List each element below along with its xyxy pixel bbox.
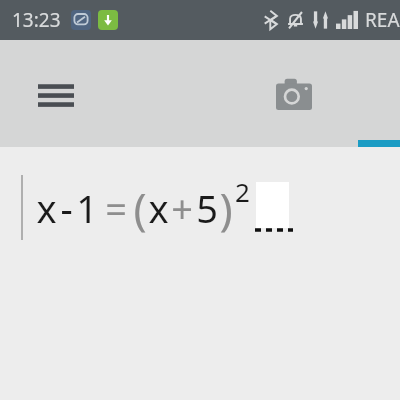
staticText: x [36,182,57,234]
button[interactable]: Camera [266,68,322,120]
staticText: REA [365,7,400,33]
button[interactable]: Answer input [255,175,293,240]
staticText: - [60,182,73,234]
staticText: 13:23 [12,7,61,33]
staticText: 2 [235,174,250,209]
staticText: 1 [76,182,98,234]
staticText: x [148,182,169,234]
button[interactable]: Menu [26,70,86,118]
staticText: 5 [196,182,218,234]
staticText: ( [133,178,147,238]
staticText: ) [219,178,233,238]
staticText: + [171,182,193,234]
staticText: = [105,182,127,234]
button[interactable]: x [21,175,293,240]
